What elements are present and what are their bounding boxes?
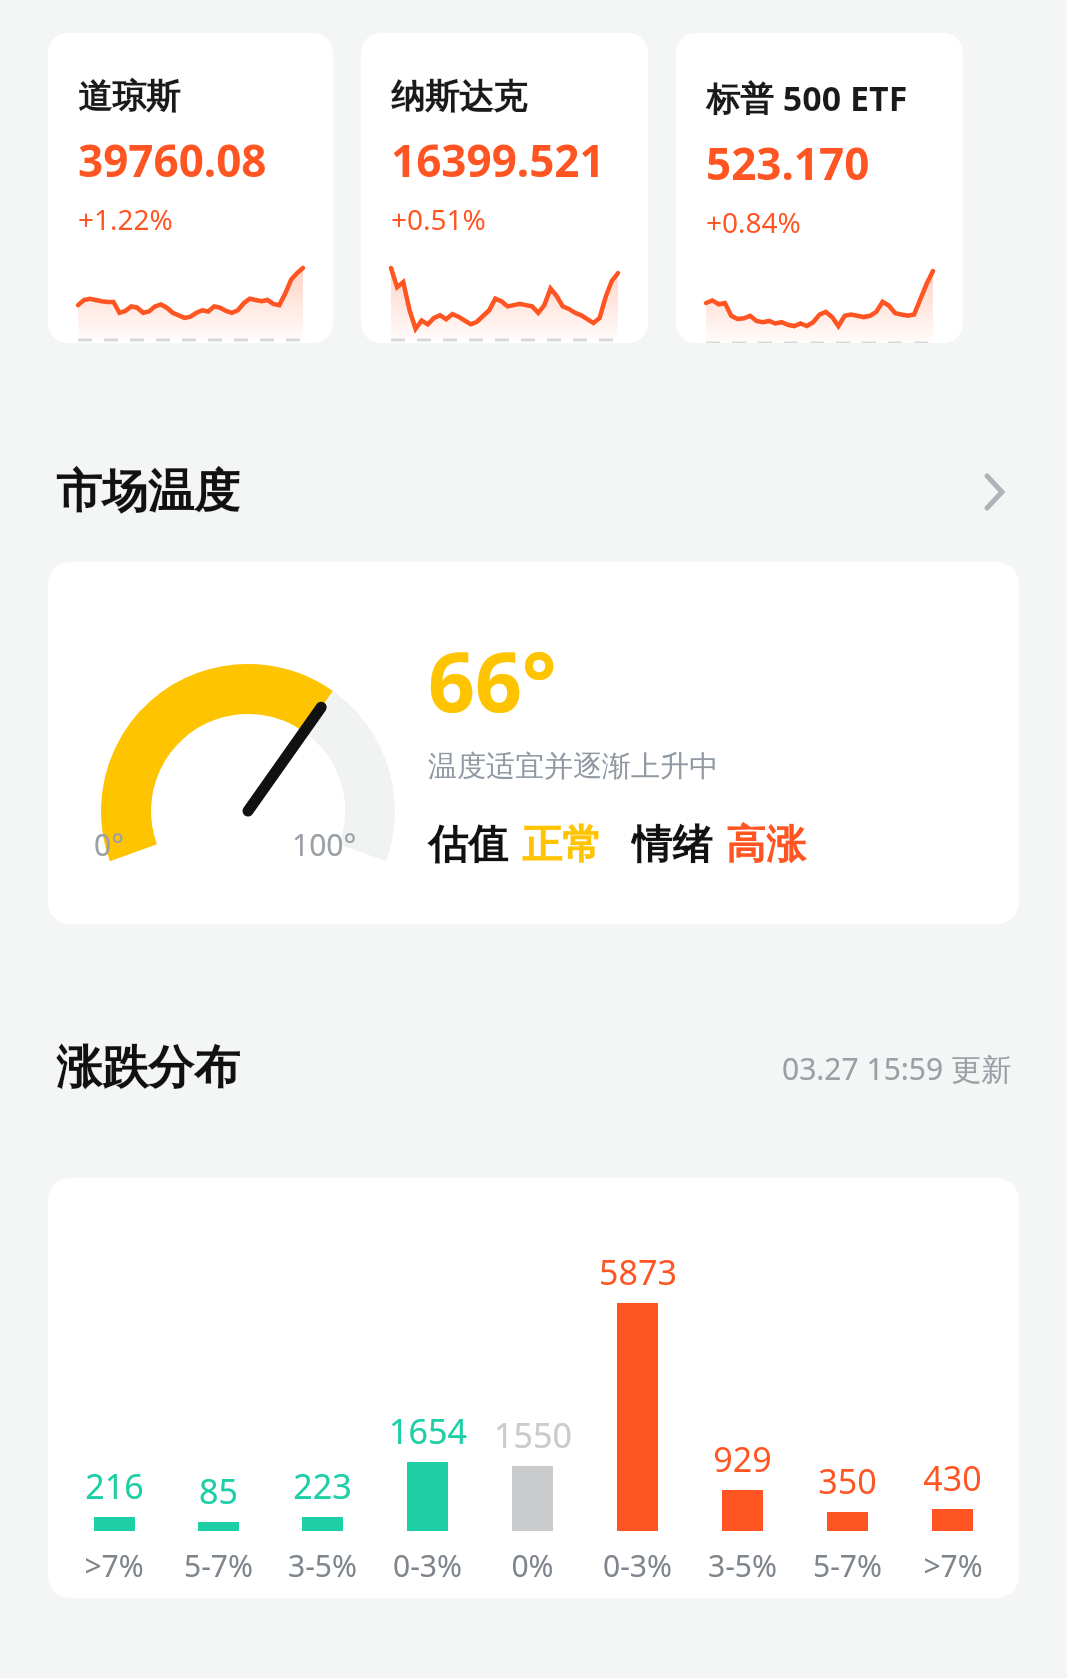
staticText: 16399.521 [391,130,605,190]
staticText: 350 [818,1458,877,1504]
staticText: 高涨 [726,819,806,869]
staticText: 3-5% [708,1545,777,1586]
staticText: 523.170 [706,133,870,193]
staticText: 929 [713,1436,772,1482]
staticText: 正常 [522,819,602,869]
staticText: 216 [85,1463,144,1509]
staticText: 涨跌分布 [56,1039,240,1097]
button[interactable]: 市场温度 [56,455,1011,529]
staticText: 03.27 15:59 更新 [782,1048,1011,1089]
staticText: 1654 [389,1408,467,1454]
staticText: 39760.08 [78,130,267,190]
staticText: 5873 [599,1249,677,1295]
staticText: 情绪 [632,819,712,869]
staticText: 0-3% [393,1545,462,1586]
staticText: 5-7% [813,1545,882,1586]
staticText: 标普 500 ETF [706,75,908,121]
button[interactable]: 道琼斯 [48,33,333,343]
button[interactable]: 涨跌分布 [56,1031,1011,1105]
staticText: 市场温度 [56,463,240,521]
staticText: 66° [428,624,557,736]
staticText: 85 [199,1468,238,1514]
staticText: +0.51% [391,200,486,238]
staticText: >7% [923,1545,983,1586]
button[interactable]: 纳斯达克 [361,33,648,343]
staticText: >7% [84,1545,144,1586]
staticText: 0-3% [603,1545,672,1586]
staticText: 道琼斯 [78,75,180,118]
staticText: 430 [923,1455,982,1501]
button[interactable]: 标普 500 ETF [676,33,963,343]
staticText: 纳斯达克 [391,75,527,118]
staticText: +1.22% [78,200,173,238]
staticText: 100° [292,824,357,865]
staticText: 3-5% [288,1545,357,1586]
staticText: 223 [293,1463,352,1509]
staticText: 估值 [428,819,508,869]
staticText: 5-7% [184,1545,253,1586]
staticText: 温度适宜并逐渐上升中 [428,748,718,785]
staticText: +0.84% [706,203,801,241]
staticText: 1550 [494,1412,572,1458]
button[interactable]: 0° [48,562,1019,924]
staticText: 0° [94,824,124,865]
staticText: 0% [511,1545,554,1586]
button[interactable]: 216 [48,1178,1019,1598]
